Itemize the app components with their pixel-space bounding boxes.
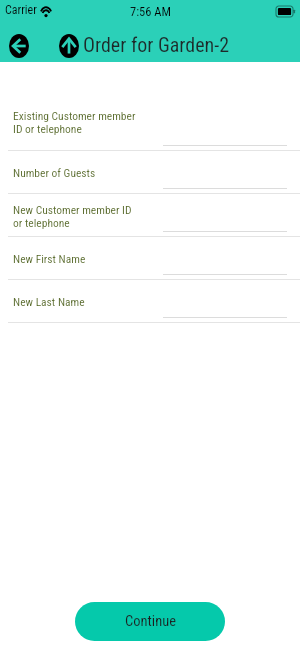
button[interactable]: Existing Customer member (0, 92, 300, 151)
button[interactable]: New Customer member ID (0, 194, 300, 237)
staticText: Order for Garden-2 (83, 33, 230, 56)
staticText: New Customer member ID (13, 203, 132, 216)
button[interactable]: Back (9, 34, 29, 58)
button[interactable]: Up (59, 34, 79, 58)
staticText: 7:56 AM (130, 4, 171, 19)
button[interactable]: New First Name (0, 237, 300, 280)
staticText: Continue (125, 613, 176, 630)
staticText: ID or telephone (13, 122, 82, 135)
button[interactable]: New Last Name (0, 280, 300, 323)
button[interactable]: Continue (75, 602, 225, 641)
staticText: New First Name (13, 252, 86, 265)
staticText: Existing Customer member (13, 109, 136, 122)
staticText: Number of Guests (13, 166, 96, 179)
button[interactable]: Number of Guests (0, 151, 300, 194)
staticText: New Last Name (13, 295, 85, 308)
staticText: or telephone (13, 216, 70, 229)
staticText: Carrier (5, 3, 37, 17)
